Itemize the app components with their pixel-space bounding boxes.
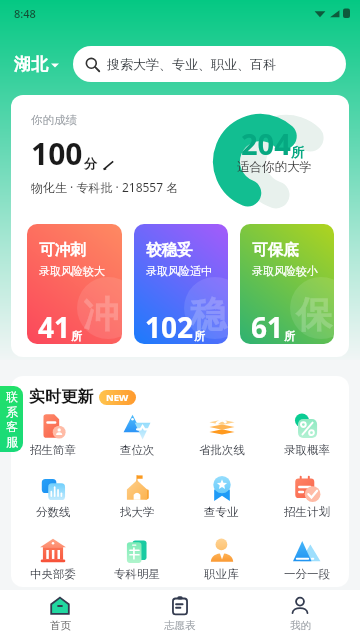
staticText: 服 bbox=[6, 434, 18, 449]
staticText: 204 bbox=[241, 124, 291, 163]
staticText: 8:48 bbox=[14, 6, 36, 21]
button[interactable]: 录取概率 bbox=[264, 408, 349, 470]
staticText: 物化生 · 专科批 · 218557 名 bbox=[31, 179, 179, 195]
staticText: 录取风险适中 bbox=[146, 264, 212, 278]
staticText: 湖北 bbox=[14, 54, 48, 75]
staticText: 一分一段 bbox=[284, 567, 330, 581]
staticText: 分数线 bbox=[36, 505, 71, 519]
staticText: 所 bbox=[194, 329, 205, 343]
staticText: 找大学 bbox=[120, 505, 155, 519]
button[interactable]: 省批次线 bbox=[179, 408, 264, 470]
staticText: NEW bbox=[106, 391, 129, 404]
staticText: 查位次 bbox=[120, 443, 155, 457]
staticText: 100 bbox=[31, 133, 83, 174]
staticText: 保 bbox=[296, 292, 332, 337]
staticText: 职业库 bbox=[204, 567, 239, 581]
staticText: 招生计划 bbox=[284, 505, 330, 519]
staticText: 专科明星 bbox=[114, 567, 160, 581]
staticText: 较稳妥 bbox=[146, 240, 193, 260]
staticText: 省批次线 bbox=[199, 443, 245, 457]
button[interactable]: 冲 bbox=[27, 224, 122, 344]
staticText: 可保底 bbox=[252, 240, 299, 260]
staticText: 我的 bbox=[290, 619, 311, 632]
staticText: 41 bbox=[38, 308, 71, 344]
staticText: 102 bbox=[145, 308, 194, 344]
staticText: 61 bbox=[251, 308, 284, 344]
staticText: 系 bbox=[6, 404, 18, 419]
button[interactable]: 我的 bbox=[240, 590, 360, 640]
staticText: 实时更新 bbox=[29, 387, 93, 407]
button[interactable]: 查位次 bbox=[95, 408, 179, 470]
button[interactable]: 搜索大学、专业、职业、百科 bbox=[73, 46, 346, 82]
staticText: 适合你的大学 bbox=[237, 159, 312, 175]
staticText: 搜索大学、专业、职业、百科 bbox=[107, 56, 276, 72]
staticText: 客 bbox=[6, 419, 18, 434]
staticText: 中央部委 bbox=[30, 567, 76, 581]
button[interactable]: 一分一段 bbox=[264, 532, 349, 587]
staticText: 查专业 bbox=[204, 505, 239, 519]
staticText: 冲 bbox=[83, 292, 119, 337]
staticText: 录取风险较大 bbox=[39, 264, 105, 278]
staticText: 所 bbox=[284, 329, 295, 343]
staticText: 录取风险较小 bbox=[252, 264, 318, 278]
button[interactable]: 招生简章 bbox=[11, 408, 95, 470]
staticText: 你的成绩 bbox=[31, 113, 77, 127]
staticText: 所 bbox=[291, 144, 304, 160]
staticText: 稳 bbox=[190, 292, 226, 337]
staticText: 联 bbox=[6, 389, 18, 404]
staticText: 志愿表 bbox=[164, 619, 196, 632]
button[interactable]: 首页 bbox=[0, 590, 120, 640]
button[interactable]: 招生计划 bbox=[264, 470, 349, 532]
button[interactable]: 稳 bbox=[134, 224, 228, 344]
button[interactable]: 保 bbox=[240, 224, 334, 344]
staticText: 招生简章 bbox=[30, 443, 76, 457]
button[interactable]: 志愿表 bbox=[120, 590, 240, 640]
button[interactable]: 找大学 bbox=[95, 470, 179, 532]
staticText: 所 bbox=[71, 329, 82, 343]
staticText: 可冲刺 bbox=[39, 240, 86, 260]
button[interactable]: 职业库 bbox=[179, 532, 264, 587]
staticText: 首页 bbox=[50, 619, 71, 632]
button[interactable]: 查专业 bbox=[179, 470, 264, 532]
button[interactable]: 专科明星 bbox=[95, 532, 179, 587]
button[interactable]: 中央部委 bbox=[11, 532, 95, 587]
staticText: 录取概率 bbox=[284, 443, 330, 457]
button[interactable]: 联系客服 bbox=[0, 386, 23, 452]
staticText: 分 bbox=[84, 155, 97, 171]
button[interactable]: 分数线 bbox=[11, 470, 95, 532]
button[interactable]: 湖北 bbox=[14, 54, 59, 75]
